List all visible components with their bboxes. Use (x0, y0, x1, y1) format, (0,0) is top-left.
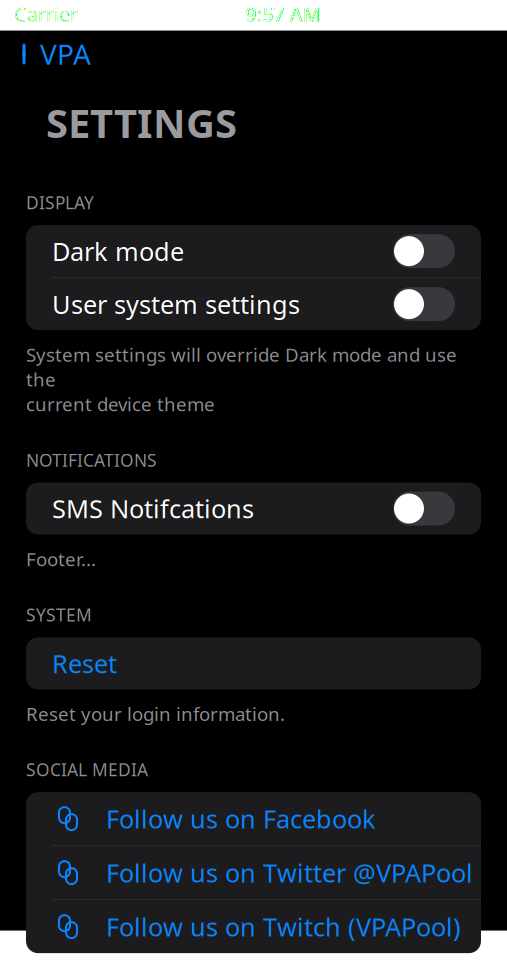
staticText: Reset your login information. (26, 701, 285, 726)
staticText: VPA (40, 35, 91, 73)
staticText: Follow us on Facebook (106, 802, 376, 835)
button[interactable]: Follow us on Twitter @VPAPool (26, 846, 481, 899)
staticText: Footer... (26, 546, 96, 571)
staticText: Carrier (14, 1, 78, 27)
staticText: NOTIFICATIONS (26, 448, 157, 471)
staticText: Follow us on Twitch (VPAPool) (106, 910, 461, 943)
staticText: Follow us on Twitter @VPAPool (106, 856, 473, 889)
button[interactable]: Follow us on Facebook (26, 792, 481, 845)
staticText: System settings will override Dark mode … (26, 342, 457, 416)
staticText: SOCIAL MEDIA (26, 758, 148, 781)
button[interactable]: Reset (26, 637, 481, 689)
button[interactable]: Follow us on Twitch (VPAPool) (26, 900, 481, 953)
button[interactable]: User system settings (26, 278, 481, 330)
staticText: SYSTEM (26, 603, 92, 626)
staticText: SETTINGS (46, 96, 237, 149)
staticText: DISPLAY (26, 191, 94, 214)
staticText: Dark mode (52, 234, 184, 268)
staticText: 9:57 AM (245, 1, 321, 27)
button[interactable]: Dark mode (26, 225, 481, 277)
button[interactable]: SMS Notifcations (26, 482, 481, 534)
staticText: Reset (52, 646, 117, 680)
staticText: User system settings (52, 287, 300, 321)
staticText: SMS Notifcations (52, 492, 254, 525)
button[interactable]: VPA (4, 36, 105, 72)
